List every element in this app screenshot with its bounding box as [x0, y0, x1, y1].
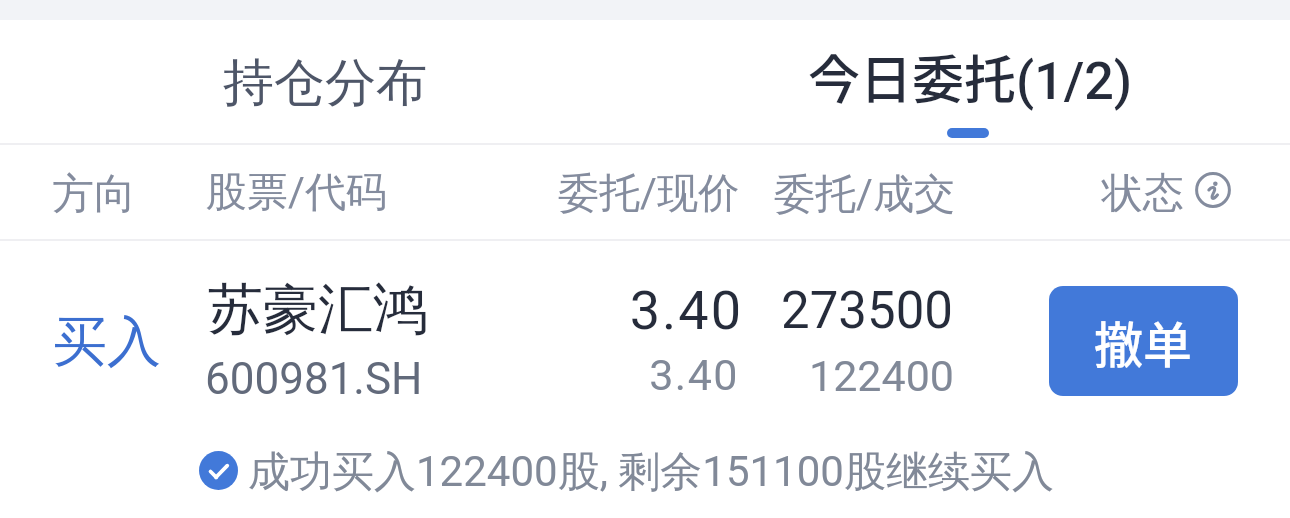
staticText: 今日委托(1/2) — [808, 39, 1133, 114]
staticText: 撤单 — [1094, 306, 1193, 377]
staticText: 委托/现价 — [558, 168, 739, 220]
staticText: 3.40 — [540, 279, 743, 342]
staticText: 持仓分布 — [223, 51, 427, 115]
button[interactable]: 状态说明 — [1195, 172, 1231, 208]
staticText: 3.40 — [540, 350, 739, 400]
button[interactable]: 买入 — [0, 241, 1290, 518]
staticText: 买入 — [53, 308, 161, 376]
staticText: 股票/代码 — [206, 167, 387, 219]
staticText: 委托/成交 — [774, 169, 955, 221]
staticText: 状态 — [1102, 168, 1184, 220]
staticText: 122400 — [750, 351, 954, 401]
button[interactable]: 撤单 — [1049, 286, 1238, 396]
staticText: 苏豪汇鸿 — [208, 275, 428, 344]
button[interactable]: 持仓分布 — [0, 20, 645, 144]
staticText: 成功买入122400股, 剩余151100股继续买入 — [248, 446, 1054, 499]
staticText: 600981.SH — [205, 353, 423, 405]
staticText: 方向 — [52, 168, 136, 221]
staticText: 273500 — [750, 281, 953, 341]
button[interactable]: 今日委托(1/2) — [645, 20, 1290, 144]
